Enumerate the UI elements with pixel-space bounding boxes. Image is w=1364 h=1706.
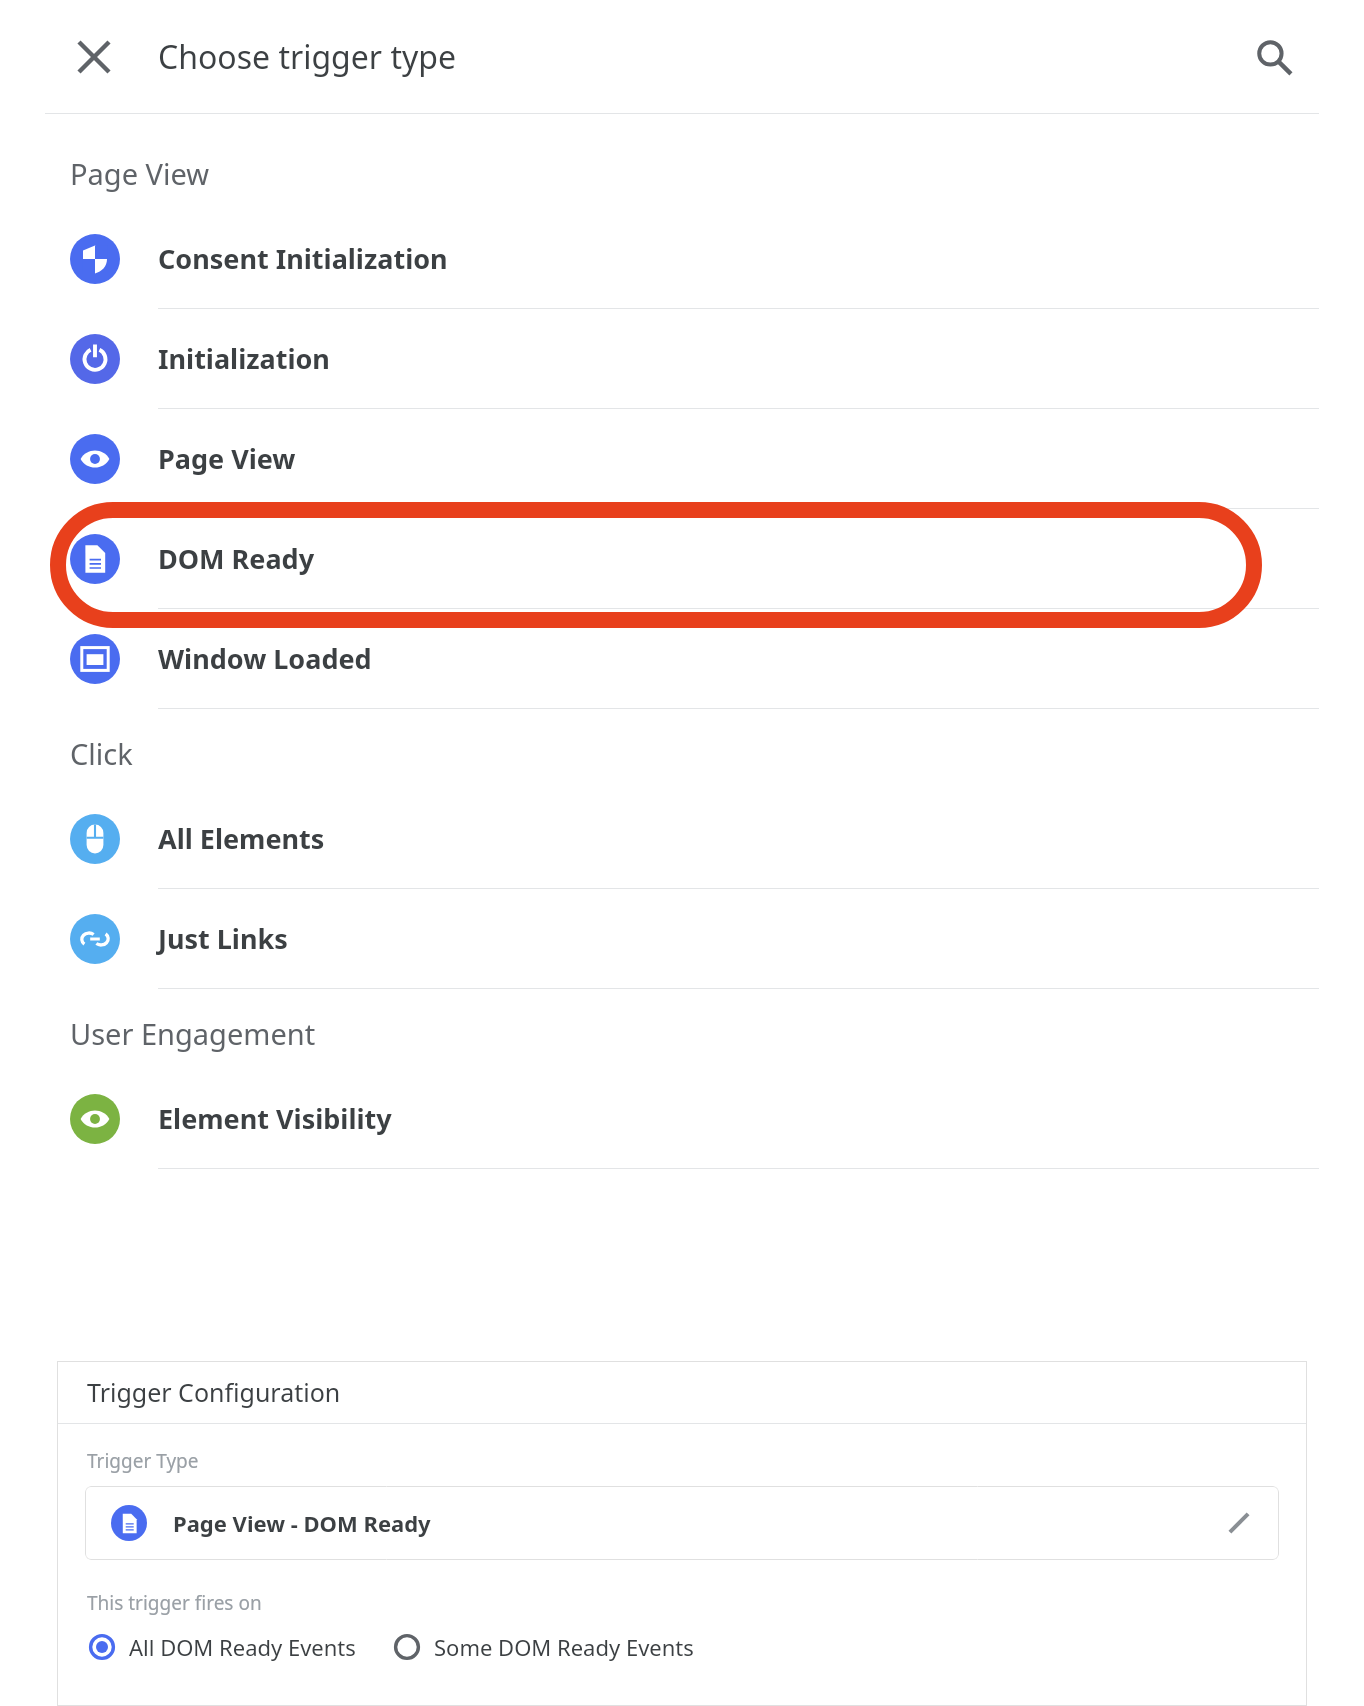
staticText: Page View bbox=[158, 440, 296, 477]
button[interactable]: All DOM Ready Events bbox=[81, 1626, 362, 1668]
button[interactable]: DOM Ready bbox=[0, 509, 1364, 609]
staticText: Some DOM Ready Events bbox=[434, 1632, 694, 1662]
staticText: Initialization bbox=[158, 340, 330, 377]
button[interactable]: Search bbox=[1242, 25, 1306, 89]
staticText: Just Links bbox=[158, 920, 288, 957]
button[interactable]: Some DOM Ready Events bbox=[386, 1626, 700, 1668]
staticText: Page View - DOM Ready bbox=[173, 1508, 431, 1538]
button[interactable]: Window Loaded bbox=[0, 609, 1364, 709]
staticText: This trigger fires on bbox=[87, 1590, 262, 1616]
button[interactable]: Element Visibility bbox=[0, 1069, 1364, 1169]
staticText: User Engagement bbox=[70, 1014, 316, 1053]
staticText: All Elements bbox=[158, 820, 325, 857]
staticText: Trigger Configuration bbox=[87, 1375, 341, 1409]
button[interactable]: All Elements bbox=[0, 789, 1364, 889]
staticText: Consent Initialization bbox=[158, 240, 448, 277]
staticText: All DOM Ready Events bbox=[129, 1632, 356, 1662]
button[interactable]: Consent Initialization bbox=[0, 209, 1364, 309]
button[interactable]: Initialization bbox=[0, 309, 1364, 409]
staticText: DOM Ready bbox=[158, 540, 315, 577]
staticText: Choose trigger type bbox=[158, 35, 456, 79]
button[interactable]: Edit bbox=[1219, 1503, 1259, 1543]
staticText: Window Loaded bbox=[158, 640, 372, 677]
staticText: Trigger Type bbox=[87, 1448, 199, 1474]
staticText: Element Visibility bbox=[158, 1100, 392, 1137]
staticText: Click bbox=[70, 734, 133, 773]
button[interactable]: Page View bbox=[0, 409, 1364, 509]
button[interactable]: Page View - DOM Ready bbox=[85, 1486, 1279, 1560]
staticText: Page View bbox=[70, 154, 209, 193]
button[interactable]: Just Links bbox=[0, 889, 1364, 989]
button[interactable]: Close bbox=[62, 25, 126, 89]
